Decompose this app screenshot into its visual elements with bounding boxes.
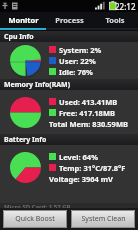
- staticText: Micro SD Card: 1.57 GB: [4, 203, 71, 208]
- button[interactable]: System Clean: [71, 210, 135, 228]
- staticText: Total Mem: 830.59MB: [49, 119, 128, 129]
- button[interactable]: Tools: [92, 12, 138, 28]
- staticText: Tools: [105, 15, 125, 25]
- button[interactable]: Quick Boost: [3, 210, 67, 228]
- staticText: System: 2%: [59, 45, 102, 55]
- staticText: User: 22%: [59, 56, 96, 66]
- staticText: Idle: 76%: [59, 67, 93, 77]
- button[interactable]: Process: [46, 12, 92, 28]
- staticText: Temp: 31°C/87.8°F: [59, 163, 126, 173]
- staticText: Free: 417.18MB: [59, 108, 115, 118]
- staticText: System Clean: [81, 214, 126, 224]
- staticText: Cpu Info: [4, 32, 34, 42]
- staticText: Used: 413.41MB: [59, 97, 118, 107]
- staticText: Level: 64%: [59, 152, 98, 162]
- staticText: Memory Info(RAM): [4, 80, 71, 90]
- staticText: Process: [55, 15, 84, 25]
- staticText: Quick Boost: [15, 214, 55, 224]
- button[interactable]: Monitor: [0, 12, 46, 28]
- staticText: Battery Info: [4, 135, 47, 145]
- staticText: Monitor: [8, 15, 39, 25]
- staticText: Voltage: 3964 mV: [49, 174, 113, 184]
- staticText: 22:12: [115, 1, 136, 12]
